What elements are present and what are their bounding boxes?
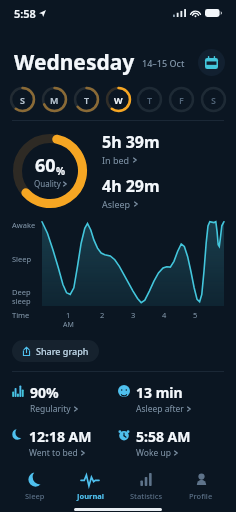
- staticText: 3: [131, 310, 136, 320]
- button[interactable]: F: [168, 86, 195, 113]
- staticText: Statistics: [130, 491, 163, 501]
- staticText: 5h 39m: [102, 131, 160, 153]
- button[interactable]: 60: [12, 133, 88, 209]
- button[interactable]: T: [73, 86, 100, 113]
- staticText: S: [211, 94, 216, 106]
- staticText: 5:58 AM: [136, 427, 191, 446]
- button[interactable]: Journal: [64, 465, 116, 507]
- button[interactable]: Calendar: [198, 49, 225, 76]
- button[interactable]: 4h 29m: [102, 175, 160, 210]
- button[interactable]: W: [105, 86, 132, 113]
- staticText: 60: [35, 153, 56, 178]
- staticText: Awake: [12, 220, 36, 230]
- button[interactable]: M: [41, 86, 68, 113]
- staticText: Asleep: [102, 198, 131, 210]
- staticText: Went to bed: [29, 447, 78, 459]
- staticText: T: [147, 94, 153, 106]
- staticText: Sleep: [12, 254, 32, 264]
- staticText: 4h 29m: [102, 175, 160, 197]
- staticText: Share graph: [36, 345, 89, 357]
- staticText: 13 min: [136, 383, 183, 402]
- staticText: In bed: [102, 154, 130, 166]
- staticText: Profile: [189, 491, 213, 501]
- button[interactable]: 5:58 AM: [118, 427, 224, 459]
- button[interactable]: Sleep: [9, 465, 61, 507]
- staticText: Deep sleep: [12, 287, 31, 306]
- staticText: %: [56, 164, 66, 178]
- staticText: Woke up: [136, 447, 171, 459]
- button[interactable]: S: [9, 86, 36, 113]
- staticText: W: [114, 94, 123, 106]
- button[interactable]: 13 min: [118, 383, 224, 415]
- staticText: 4: [162, 310, 167, 320]
- staticText: 5: [193, 310, 198, 320]
- staticText: Time: [12, 310, 30, 320]
- button[interactable]: Statistics: [120, 465, 172, 507]
- button[interactable]: Share graph: [12, 340, 99, 362]
- staticText: 5:58: [14, 6, 36, 21]
- staticText: F: [179, 94, 184, 106]
- staticText: 14–15 Oct: [142, 57, 185, 69]
- staticText: Regularity: [30, 403, 71, 415]
- staticText: Asleep after: [136, 403, 184, 415]
- staticText: 90%: [30, 383, 59, 402]
- staticText: AM: [63, 320, 74, 330]
- staticText: 2: [100, 310, 105, 320]
- staticText: S: [20, 94, 25, 106]
- staticText: Journal: [77, 491, 104, 501]
- button[interactable]: 12:18 AM: [12, 427, 118, 459]
- button[interactable]: 5h 39m: [102, 131, 160, 166]
- staticText: 12:18 AM: [29, 427, 92, 446]
- staticText: Wednesday: [14, 48, 135, 77]
- button[interactable]: T: [136, 86, 163, 113]
- staticText: T: [84, 94, 90, 106]
- staticText: 1: [66, 310, 71, 320]
- button[interactable]: Profile: [175, 465, 227, 507]
- staticText: Sleep: [25, 491, 45, 501]
- staticText: Quality: [34, 178, 61, 189]
- staticText: M: [50, 94, 59, 106]
- button[interactable]: 90%: [12, 383, 118, 415]
- button[interactable]: S: [200, 86, 227, 113]
